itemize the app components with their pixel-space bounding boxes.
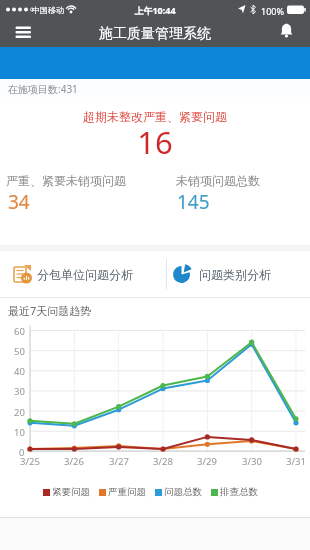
button[interactable]: 分包单位问题分析 [0,251,166,297]
staticText: 上午10:44 [0,4,310,16]
staticText: 3/25 [20,455,40,468]
staticText: 施工质量管理系统 [0,25,310,43]
staticText: 3/26 [64,455,84,468]
staticText: 中国移动 [32,5,64,15]
staticText: 严重问题 [108,486,146,498]
staticText: 最近7天问题趋势 [8,303,92,318]
staticText: 50 [14,345,25,358]
staticText: 3/31 [286,455,306,468]
staticText: 问题总数 [164,486,202,498]
staticText: 20 [14,406,25,419]
staticText: 100% [261,5,284,17]
staticText: 紧要问题 [52,486,90,498]
button[interactable] [274,20,300,44]
staticText: 严重、紧要未销项问题 [6,173,126,188]
staticText: 16 [0,121,310,163]
staticText: 在施项目数:431 [8,82,78,96]
staticText: 3/28 [153,455,173,468]
staticText: 10 [14,426,25,439]
staticText: 超期未整改严重、紧要问题 [0,109,310,124]
staticText: 60 [14,325,25,338]
staticText: 排查总数 [220,486,258,498]
staticText: 0 [19,446,25,459]
button[interactable]: 问题类别分析 [167,251,310,297]
staticText: 34 [8,189,30,215]
button[interactable] [8,23,42,45]
staticText: 3/29 [197,455,217,468]
staticText: 145 [177,189,210,215]
staticText: 40 [14,365,25,378]
staticText: 问题类别分析 [199,267,271,282]
staticText: 30 [14,385,25,398]
staticText: 未销项问题总数 [176,173,260,188]
staticText: 3/30 [242,455,262,468]
staticText: 分包单位问题分析 [37,267,133,282]
staticText: 3/27 [109,455,129,468]
